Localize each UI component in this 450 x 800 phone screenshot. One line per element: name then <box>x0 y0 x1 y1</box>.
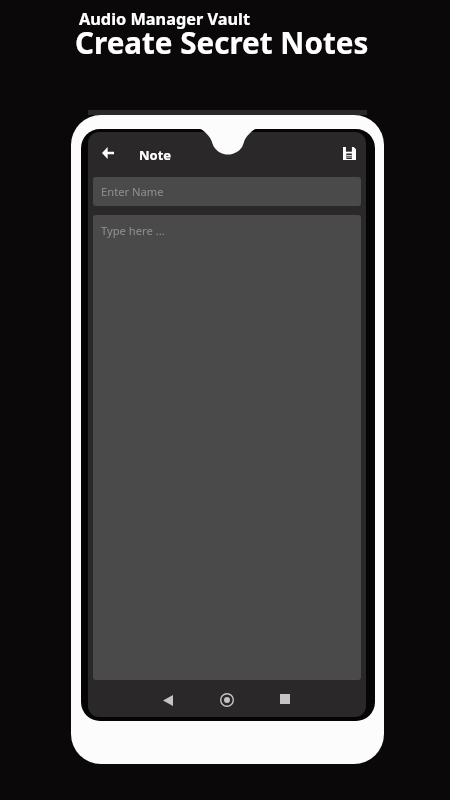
staticText: Type here ... <box>101 223 165 238</box>
button[interactable]: Enter Name <box>93 177 361 206</box>
button[interactable]: Back <box>96 141 120 165</box>
staticText: Note <box>139 146 172 164</box>
staticText: Audio Manager Vault <box>79 8 251 30</box>
staticText: Enter Name <box>101 184 164 199</box>
button[interactable]: Recents <box>273 687 297 711</box>
button[interactable]: Back <box>156 688 180 712</box>
staticText: Create Secret Notes <box>75 22 369 62</box>
button[interactable]: Save <box>337 141 361 165</box>
button[interactable]: Home <box>215 688 239 712</box>
